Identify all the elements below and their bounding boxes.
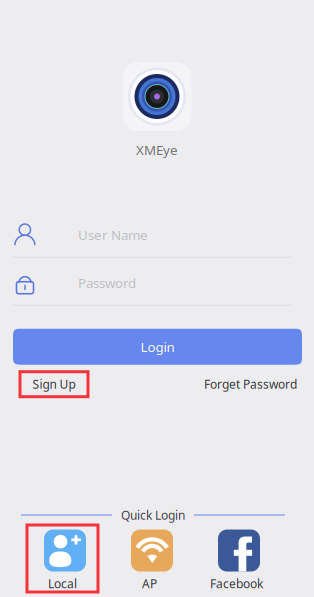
- button[interactable]: Local: [27, 525, 98, 592]
- button[interactable]: Forget Password: [204, 376, 297, 392]
- staticText: AP: [142, 575, 157, 591]
- staticText: Quick Login: [121, 507, 185, 523]
- staticText: XMEye: [136, 141, 178, 159]
- button[interactable]: Facebook: [201, 525, 272, 592]
- staticText: Facebook: [210, 575, 263, 591]
- staticText: Forget Password: [204, 376, 297, 392]
- staticText: Local: [48, 575, 77, 591]
- staticText: Password: [78, 274, 136, 292]
- staticText: Sign Up: [32, 376, 75, 392]
- button[interactable]: Login: [13, 329, 302, 365]
- button[interactable]: Sign Up: [20, 372, 88, 397]
- staticText: User Name: [78, 226, 148, 244]
- button[interactable]: AP: [114, 525, 185, 592]
- staticText: Login: [140, 338, 174, 356]
